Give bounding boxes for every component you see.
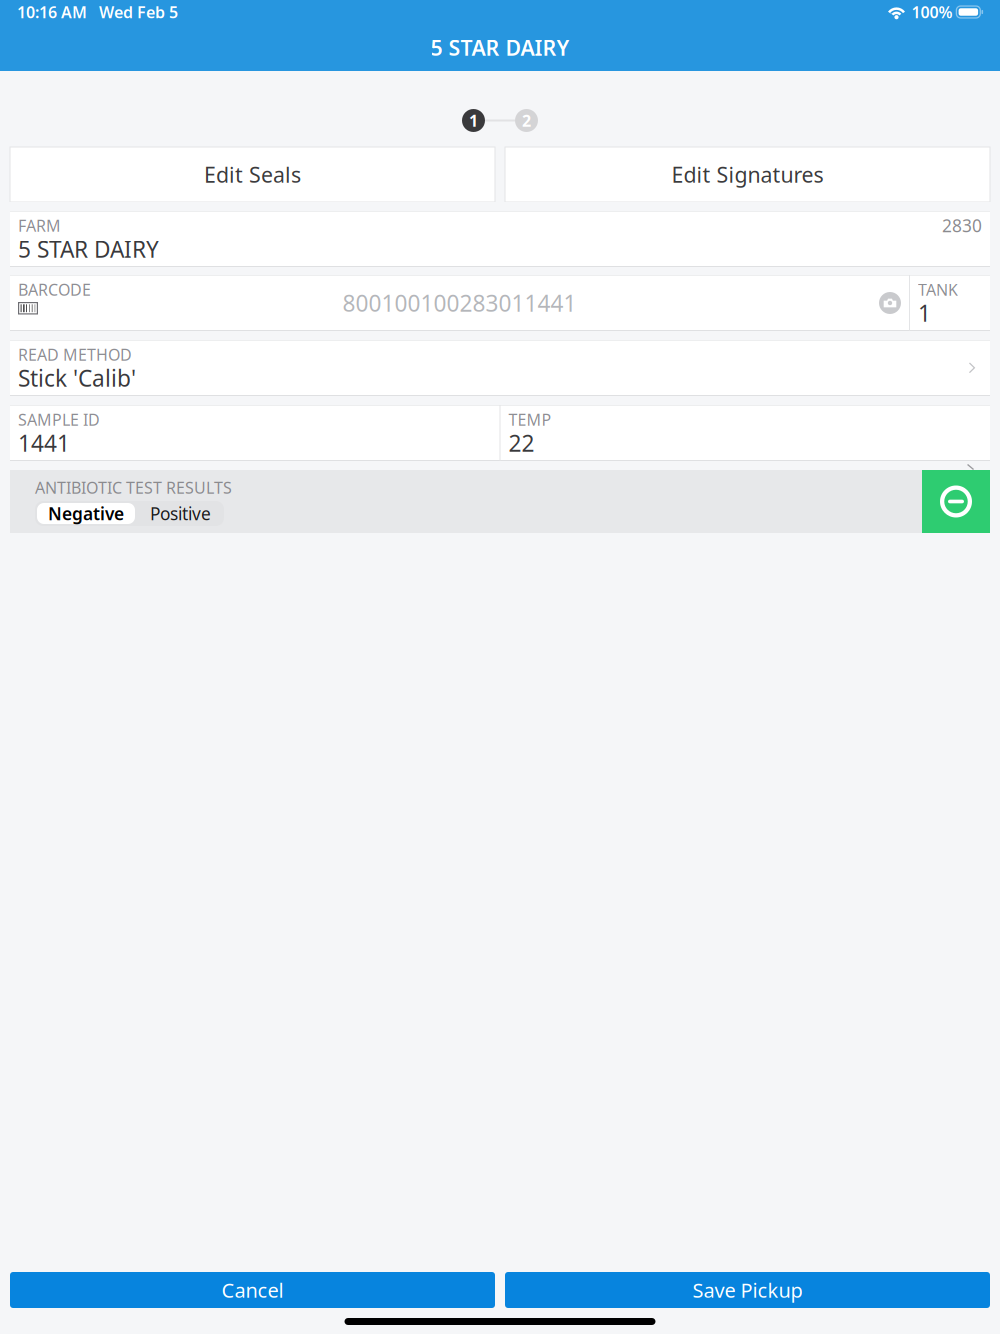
staticText: 2830 [942,214,982,237]
staticText: READ METHOD [18,344,132,365]
staticText: 1 [469,110,478,131]
button[interactable]: Edit Signatures [505,147,990,202]
staticText: ANTIBIOTIC TEST RESULTS [35,477,232,498]
staticText: 100% [907,1,956,23]
staticText: 2 [522,110,531,131]
button[interactable]: Cancel [10,1272,495,1308]
staticText: Edit Signatures [671,160,823,189]
staticText: Negative [48,502,124,525]
staticText: Edit Seals [204,160,301,189]
button[interactable]: Edit Seals [10,147,495,202]
staticText: 22 [508,428,534,458]
staticText: 5 STAR DAIRY [18,234,159,264]
staticText: SAMPLE ID [18,409,100,430]
button[interactable]: Save Pickup [505,1272,990,1308]
button[interactable]: FARM [10,211,990,267]
button[interactable]: READ METHOD [10,340,990,396]
staticText: 5 STAR DAIRY [430,33,569,62]
staticText: Stick 'Calib' [18,363,136,393]
staticText: Save Pickup [692,1277,802,1303]
staticText: 1 [918,298,931,328]
staticText: Cancel [221,1277,283,1303]
staticText: FARM [18,215,61,236]
staticText: BARCODE [18,279,91,300]
button[interactable]: Negative [35,501,137,526]
staticText: TANK [918,279,958,300]
staticText: 800100100283011441 [342,288,576,318]
staticText: 1441 [18,428,70,458]
staticText: 10:16 AM Wed Feb 5 [17,1,178,23]
staticText: TEMP [508,409,551,430]
staticText: Positive [150,502,211,525]
button[interactable]: Delete [922,470,990,533]
button[interactable]: Scan barcode [879,292,901,314]
button[interactable]: Positive [137,501,224,526]
